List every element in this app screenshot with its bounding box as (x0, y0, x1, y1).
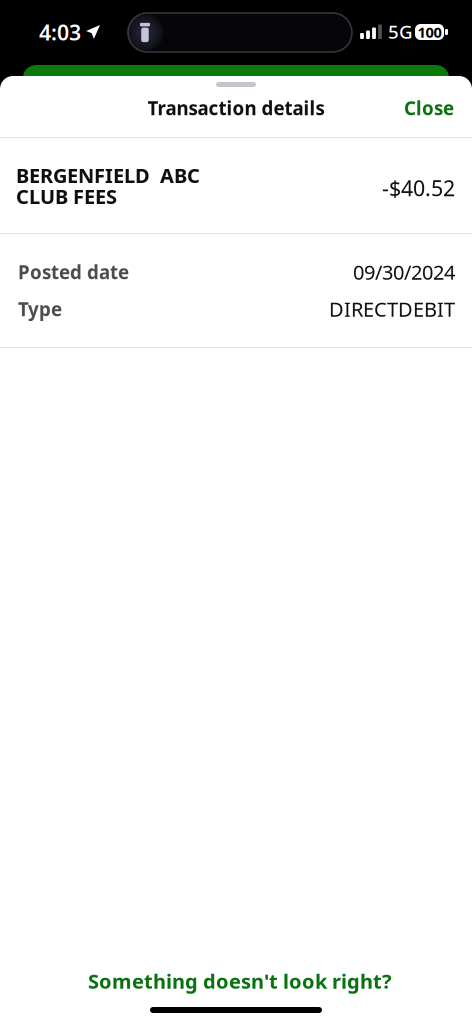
staticText: Something doesn't look right? (88, 968, 392, 994)
staticText: -$40.52 (382, 174, 455, 202)
button[interactable]: Something doesn't look right? (68, 956, 412, 1006)
button[interactable]: Close (386, 84, 472, 132)
staticText: Close (404, 96, 454, 120)
staticText: 100 (417, 22, 441, 42)
staticText: BERGENFIELD ABC (16, 162, 200, 189)
staticText: DIRECTDEBIT (329, 296, 455, 322)
staticText: 5G (388, 19, 413, 44)
staticText: 4:03 (39, 18, 81, 46)
staticText: CLUB FEES (16, 183, 117, 210)
staticText: Posted date (18, 260, 129, 284)
staticText: 09/30/2024 (353, 259, 455, 285)
staticText: Type (18, 297, 62, 321)
staticText: Transaction details (147, 96, 324, 120)
